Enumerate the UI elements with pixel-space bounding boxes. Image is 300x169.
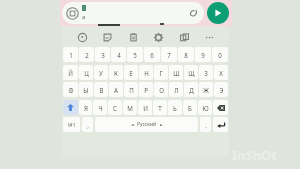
- staticText: 2: [85, 51, 89, 59]
- staticText: Е: [129, 69, 133, 77]
- staticText: 4: [117, 51, 121, 59]
- staticText: 3: [101, 51, 105, 59]
- button[interactable]: 1: [63, 47, 78, 62]
- staticText: Я: [84, 104, 88, 112]
- button[interactable]: Emoji: [74, 29, 90, 45]
- button[interactable]: Й: [63, 65, 78, 80]
- button[interactable]: Send: [207, 2, 229, 24]
- button[interactable]: Р: [139, 82, 153, 97]
- staticText: ◄: [131, 123, 134, 127]
- staticText: О: [159, 86, 164, 94]
- staticText: Д: [189, 86, 194, 94]
- staticText: Г: [159, 69, 163, 77]
- button[interactable]: М: [123, 100, 137, 115]
- button[interactable]: Settings: [150, 29, 166, 45]
- button[interactable]: Б: [183, 100, 197, 115]
- staticText: И: [143, 104, 148, 112]
- button[interactable]: 7: [161, 47, 177, 62]
- staticText: Ь: [173, 104, 177, 112]
- button[interactable]: Г: [154, 65, 168, 80]
- staticText: К: [114, 69, 118, 77]
- staticText: Щ: [188, 69, 195, 77]
- button[interactable]: 4: [111, 47, 126, 62]
- button[interactable]: Щ: [184, 65, 198, 80]
- staticText: InShOt: [232, 146, 278, 164]
- button[interactable]: Т: [153, 100, 167, 115]
- staticText: М: [127, 104, 133, 112]
- staticText: Б: [188, 104, 192, 112]
- button[interactable]: Н: [139, 65, 153, 80]
- staticText: Ш: [173, 69, 180, 77]
- button[interactable]: Я: [79, 100, 92, 115]
- button[interactable]: З: [199, 65, 213, 80]
- staticText: В: [99, 86, 104, 94]
- button[interactable]: В: [94, 82, 108, 97]
- staticText: !#1: [67, 121, 76, 128]
- button[interactable]: А: [109, 82, 123, 97]
- staticText: 8: [184, 51, 188, 59]
- button[interactable]: Ш: [169, 65, 183, 80]
- staticText: 9: [201, 51, 205, 59]
- button[interactable]: 9: [195, 47, 211, 62]
- staticText: Ж: [203, 86, 209, 94]
- button[interactable]: Emoji: [66, 7, 79, 20]
- button[interactable]: П: [124, 82, 138, 97]
- button[interactable]: Ф: [63, 82, 78, 97]
- button[interactable]: Э: [214, 82, 228, 97]
- staticText: Русский: [137, 121, 157, 128]
- button[interactable]: 3: [95, 47, 110, 62]
- staticText: А: [114, 86, 118, 94]
- button[interactable]: Е: [124, 65, 138, 80]
- button[interactable]: ,: [82, 117, 93, 132]
- staticText: 6: [150, 51, 154, 59]
- button[interactable]: Д: [184, 82, 198, 97]
- button[interactable]: О: [154, 82, 168, 97]
- staticText: С: [113, 104, 117, 112]
- staticText: a: [82, 13, 86, 21]
- staticText: У: [99, 69, 103, 77]
- button[interactable]: Backspace: [213, 100, 228, 115]
- button[interactable]: У: [94, 65, 108, 80]
- button[interactable]: Enter: [213, 117, 228, 132]
- staticText: ►: [160, 123, 163, 127]
- staticText: Л: [174, 86, 179, 94]
- staticText: Ы: [83, 86, 89, 94]
- button[interactable]: 6: [144, 47, 160, 62]
- button[interactable]: 0: [212, 47, 228, 62]
- button[interactable]: Translate: [176, 29, 192, 45]
- staticText: Х: [219, 69, 223, 77]
- button[interactable]: More: [201, 29, 217, 45]
- staticText: 5: [133, 51, 137, 59]
- button[interactable]: 2: [79, 47, 94, 62]
- staticText: Э: [219, 86, 224, 94]
- button[interactable]: 8: [178, 47, 194, 62]
- button[interactable]: Л: [169, 82, 183, 97]
- staticText: ,: [87, 121, 89, 129]
- staticText: 0: [218, 51, 222, 59]
- button[interactable]: !#1: [63, 117, 80, 132]
- button[interactable]: ◄: [95, 117, 198, 132]
- button[interactable]: Ц: [79, 65, 93, 80]
- button[interactable]: .: [200, 117, 211, 132]
- staticText: Н: [144, 69, 149, 77]
- button[interactable]: 5: [127, 47, 143, 62]
- button[interactable]: К: [109, 65, 123, 80]
- button[interactable]: Ж: [199, 82, 213, 97]
- button[interactable]: Attach: [187, 7, 199, 19]
- staticText: Ю: [202, 104, 209, 112]
- button[interactable]: Emoji: [62, 2, 204, 24]
- button[interactable]: Sticker: [99, 29, 115, 45]
- staticText: Т: [158, 104, 162, 112]
- staticText: .: [205, 121, 207, 129]
- staticText: Ц: [84, 69, 89, 77]
- button[interactable]: Ю: [198, 100, 212, 115]
- button[interactable]: Clipboard: [125, 29, 141, 45]
- button[interactable]: Ч: [93, 100, 107, 115]
- staticText: П: [129, 86, 134, 94]
- button[interactable]: Ы: [79, 82, 93, 97]
- button[interactable]: С: [108, 100, 122, 115]
- button[interactable]: Shift: [63, 100, 78, 115]
- button[interactable]: Х: [214, 65, 228, 80]
- button[interactable]: Ь: [168, 100, 182, 115]
- button[interactable]: И: [138, 100, 152, 115]
